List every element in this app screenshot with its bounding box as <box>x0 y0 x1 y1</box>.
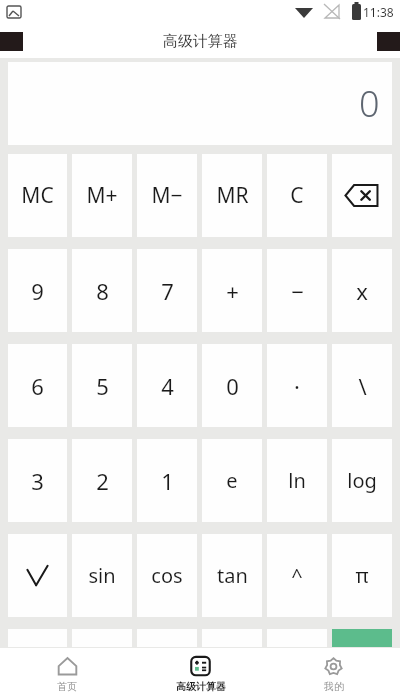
button[interactable]: ^ <box>267 534 327 617</box>
button[interactable]: − <box>267 249 327 332</box>
staticText: π <box>355 562 369 589</box>
button[interactable]: 1 <box>137 439 197 522</box>
staticText: 1 <box>161 466 174 496</box>
button[interactable]: MR <box>202 154 262 237</box>
button[interactable]: 4 <box>137 344 197 427</box>
staticText: 9 <box>31 276 44 306</box>
button[interactable]: · <box>267 344 327 427</box>
staticText: MC <box>21 181 54 210</box>
staticText: tan <box>217 562 248 589</box>
button[interactable]: log <box>332 439 392 522</box>
button[interactable]: 3 <box>8 439 67 522</box>
staticText: M+ <box>86 181 118 210</box>
button[interactable]: 2 <box>72 439 132 522</box>
staticText: 2 <box>96 466 109 496</box>
staticText: ^ <box>291 562 303 589</box>
staticText: 我的 <box>324 680 344 693</box>
button[interactable]: 首页 <box>0 648 134 700</box>
staticText: 5 <box>96 371 109 401</box>
button[interactable]: \ <box>332 344 392 427</box>
staticText: 0 <box>226 371 239 401</box>
button[interactable]: x <box>332 249 392 332</box>
button[interactable]: Square root <box>8 534 67 617</box>
staticText: 6 <box>31 371 44 401</box>
button[interactable]: 高级计算器 <box>134 648 267 700</box>
staticText: 4 <box>161 371 174 401</box>
button[interactable]: cos <box>137 534 197 617</box>
staticText: \ <box>358 371 367 401</box>
staticText: 7 <box>161 276 174 306</box>
button[interactable]: e <box>202 439 262 522</box>
button[interactable]: tan <box>202 534 262 617</box>
staticText: + <box>226 276 239 306</box>
staticText: 0 <box>359 79 380 128</box>
staticText: x <box>356 276 368 306</box>
button[interactable]: ln <box>267 439 327 522</box>
staticText: MR <box>216 181 249 210</box>
staticText: 11:38 <box>363 4 394 20</box>
staticText: log <box>347 467 377 494</box>
button[interactable]: 0 <box>202 344 262 427</box>
staticText: 高级计算器 <box>163 32 238 51</box>
staticText: e <box>226 467 238 494</box>
staticText: C <box>290 181 304 210</box>
button[interactable]: M+ <box>72 154 132 237</box>
staticText: ln <box>288 467 306 494</box>
button[interactable]: 9 <box>8 249 67 332</box>
button[interactable]: Backspace <box>332 154 392 237</box>
staticText: − <box>291 276 304 306</box>
staticText: cos <box>151 562 183 589</box>
button[interactable]: M− <box>137 154 197 237</box>
button[interactable]: 7 <box>137 249 197 332</box>
staticText: M− <box>151 181 183 210</box>
staticText: 高级计算器 <box>176 680 226 693</box>
button[interactable]: + <box>202 249 262 332</box>
staticText: · <box>294 371 300 401</box>
staticText: 3 <box>31 466 44 496</box>
button[interactable]: sin <box>72 534 132 617</box>
button[interactable]: 6 <box>8 344 67 427</box>
button[interactable]: π <box>332 534 392 617</box>
staticText: sin <box>88 562 116 589</box>
button[interactable]: 0 <box>8 62 392 145</box>
button[interactable]: MC <box>8 154 67 237</box>
button[interactable]: 5 <box>72 344 132 427</box>
staticText: 首页 <box>57 680 77 693</box>
button[interactable]: 8 <box>72 249 132 332</box>
button[interactable]: 我的 <box>267 648 400 700</box>
staticText: 8 <box>96 276 109 306</box>
button[interactable]: C <box>267 154 327 237</box>
